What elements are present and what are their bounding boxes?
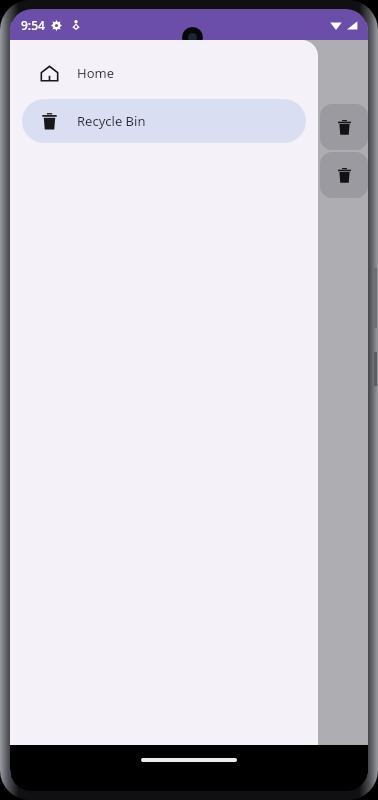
button[interactable]: Recycle Bin [22,99,306,143]
button[interactable]: Delete [320,152,368,198]
staticText: Recycle Bin [77,112,146,130]
staticText: 9:54 [21,17,45,33]
button[interactable]: Delete [320,104,368,150]
button[interactable]: Home [22,51,306,95]
staticText: Home [77,64,114,82]
